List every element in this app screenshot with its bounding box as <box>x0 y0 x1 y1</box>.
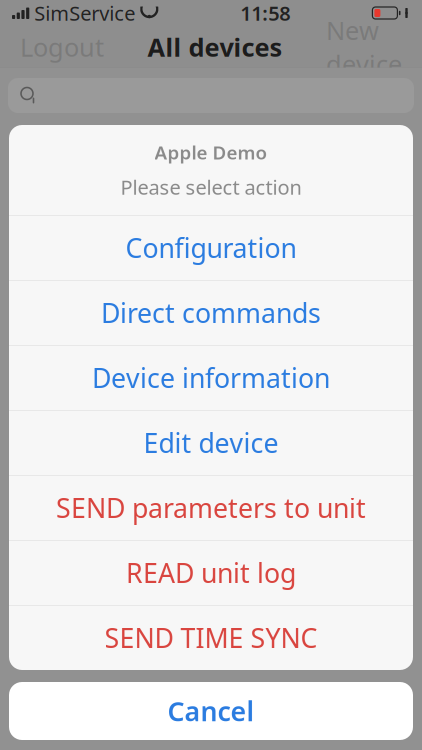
staticText: Please select action <box>120 174 301 200</box>
staticText: Cancel <box>167 693 254 729</box>
staticText: SEND TIME SYNC <box>104 620 317 655</box>
staticText: SimService <box>34 0 135 26</box>
staticText: Logout <box>20 30 104 64</box>
button[interactable]: Device information <box>9 345 413 410</box>
button[interactable]: Cancel <box>9 682 413 740</box>
button[interactable]: Logout <box>6 20 118 74</box>
button[interactable]: READ unit log <box>9 540 413 605</box>
button[interactable]: New device <box>312 3 416 91</box>
button[interactable]: Edit device <box>9 410 413 475</box>
staticText: SEND parameters to unit <box>56 490 366 525</box>
staticText: Apple Demo <box>154 140 267 165</box>
button[interactable]: Configuration <box>9 215 413 280</box>
button[interactable]: Direct commands <box>9 280 413 345</box>
button[interactable]: Search <box>8 78 414 113</box>
staticText: 11:58 <box>240 0 290 26</box>
staticText: Device information <box>92 360 330 395</box>
button[interactable]: SEND TIME SYNC <box>9 605 413 670</box>
staticText: READ unit log <box>126 555 296 590</box>
button[interactable]: SEND parameters to unit <box>9 475 413 540</box>
staticText: New device <box>326 13 402 81</box>
staticText: Direct commands <box>101 295 321 330</box>
staticText: Configuration <box>125 230 296 265</box>
staticText: Edit device <box>143 425 278 460</box>
staticText: All devices <box>147 30 282 64</box>
